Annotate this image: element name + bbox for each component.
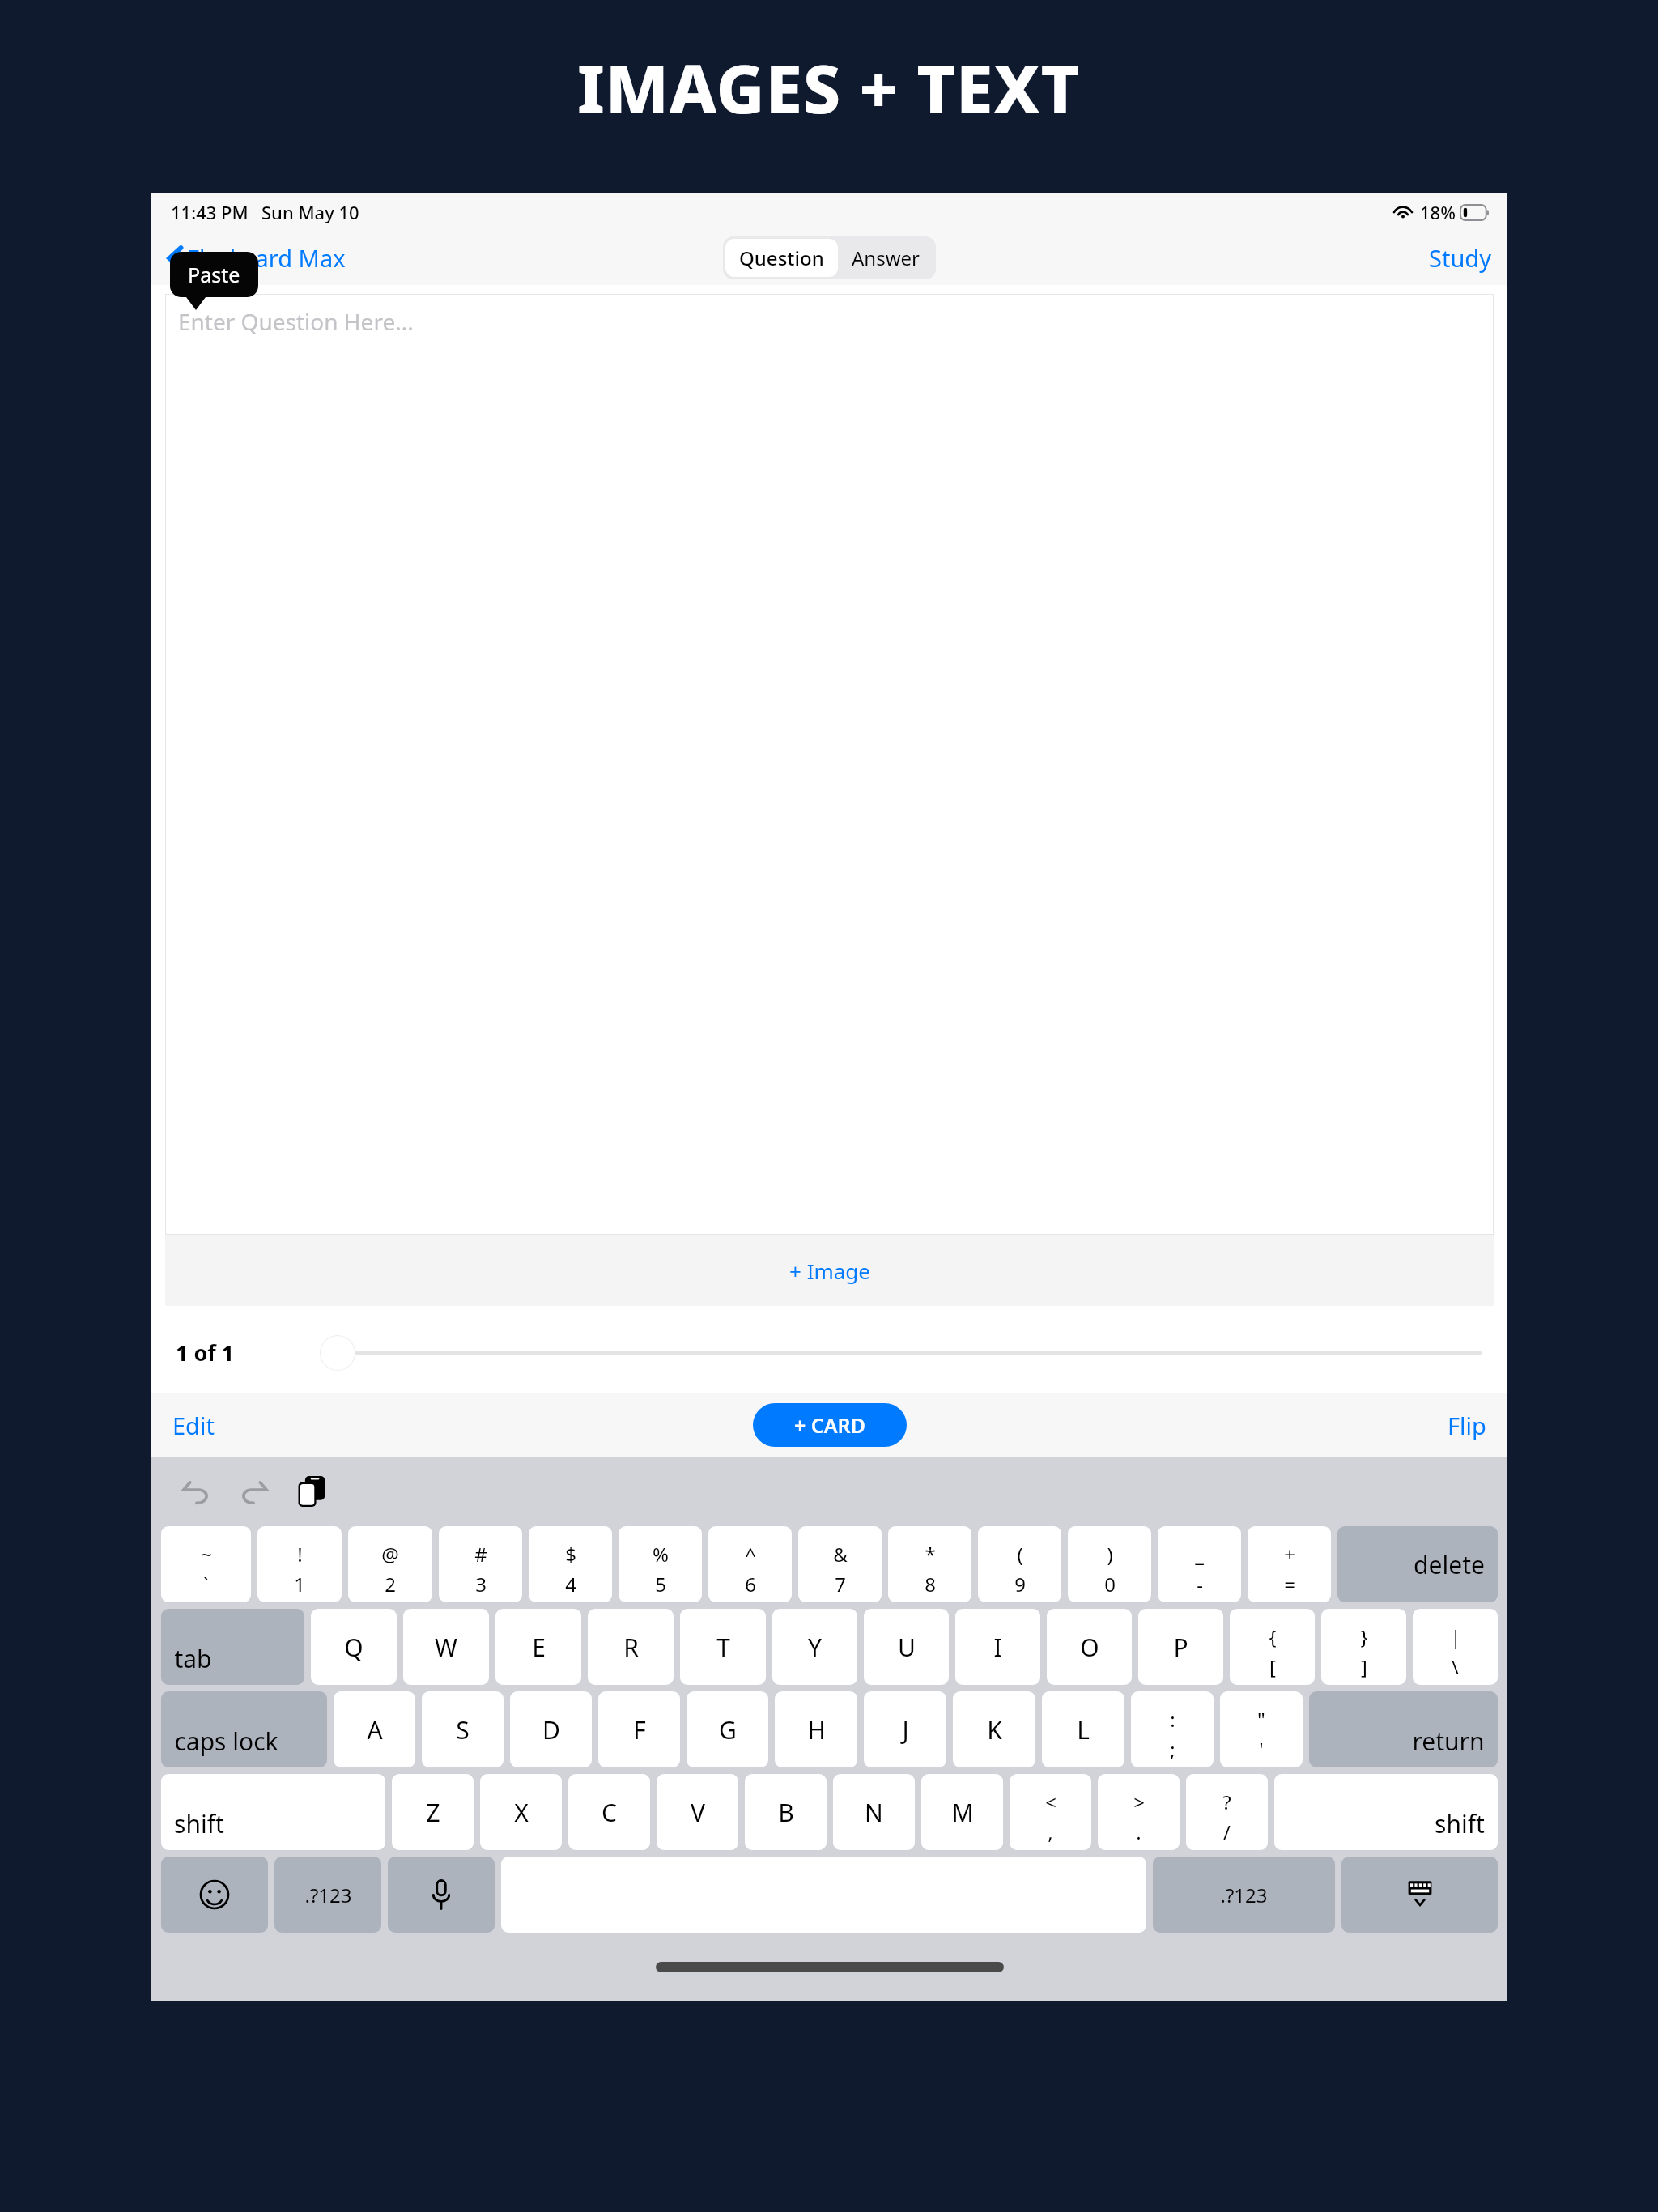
button[interactable]: Y xyxy=(772,1609,857,1685)
button[interactable]: * xyxy=(888,1526,971,1602)
button[interactable]: + CARD xyxy=(753,1403,907,1447)
staticText: Study xyxy=(1429,242,1491,274)
button[interactable]: _ xyxy=(1158,1526,1241,1602)
button[interactable]: Answer xyxy=(838,239,933,277)
button[interactable]: H xyxy=(775,1691,857,1767)
staticText: Flashcard Max xyxy=(187,242,346,274)
button[interactable]: ) xyxy=(1068,1526,1151,1602)
button[interactable]: Hide keyboard xyxy=(1341,1857,1498,1933)
button[interactable]: O xyxy=(1047,1609,1132,1685)
button[interactable]: W xyxy=(403,1609,489,1685)
button[interactable]: # xyxy=(439,1526,522,1602)
staticText: 2 xyxy=(385,1571,396,1597)
button[interactable]: + xyxy=(1248,1526,1331,1602)
button[interactable]: Redo xyxy=(231,1468,278,1515)
button[interactable]: Paste xyxy=(170,252,258,297)
staticText: G xyxy=(719,1713,737,1746)
button[interactable]: shift xyxy=(1274,1774,1498,1850)
staticText: . xyxy=(1136,1819,1141,1845)
button[interactable]: ~ xyxy=(161,1526,251,1602)
button[interactable]: D xyxy=(510,1691,592,1767)
button[interactable]: Flip xyxy=(1436,1403,1507,1448)
button[interactable]: .?123 xyxy=(274,1857,381,1933)
button[interactable]: } xyxy=(1321,1609,1406,1685)
button[interactable]: K xyxy=(953,1691,1035,1767)
button[interactable]: ! xyxy=(257,1526,342,1602)
button[interactable]: Undo xyxy=(172,1468,219,1515)
button[interactable]: | xyxy=(1413,1609,1498,1685)
button[interactable]: J xyxy=(864,1691,946,1767)
button[interactable] xyxy=(321,1330,1482,1376)
button[interactable]: : xyxy=(1131,1691,1214,1767)
button[interactable]: Edit xyxy=(151,1403,226,1448)
button[interactable]: > xyxy=(1098,1774,1180,1850)
staticText: S xyxy=(456,1713,470,1746)
staticText: $ xyxy=(565,1541,576,1568)
button[interactable]: Dictation xyxy=(388,1857,495,1933)
button[interactable]: S xyxy=(422,1691,504,1767)
button[interactable]: .?123 xyxy=(1153,1857,1335,1933)
button[interactable]: M xyxy=(921,1774,1003,1850)
staticText: ; xyxy=(1170,1736,1175,1763)
staticText: N xyxy=(865,1796,883,1829)
button[interactable]: E xyxy=(495,1609,581,1685)
button[interactable]: return xyxy=(1309,1691,1498,1767)
button[interactable]: tab xyxy=(161,1609,304,1685)
staticText: Sun May 10 xyxy=(261,200,359,224)
button[interactable]: P xyxy=(1138,1609,1223,1685)
staticText: M xyxy=(951,1796,974,1829)
staticText: } xyxy=(1360,1623,1368,1650)
button[interactable]: T xyxy=(680,1609,766,1685)
button[interactable]: Z xyxy=(392,1774,474,1850)
staticText: W xyxy=(435,1631,457,1664)
button[interactable]: shift xyxy=(161,1774,385,1850)
button[interactable]: Paste xyxy=(289,1468,336,1515)
button[interactable]: Question xyxy=(725,239,838,277)
button[interactable]: V xyxy=(657,1774,738,1850)
staticText: ' xyxy=(1259,1736,1264,1763)
staticText: , xyxy=(1048,1819,1053,1845)
button[interactable]: C xyxy=(568,1774,650,1850)
staticText: " xyxy=(1257,1706,1265,1733)
button[interactable]: G xyxy=(687,1691,768,1767)
button[interactable]: B xyxy=(745,1774,827,1850)
button[interactable]: N xyxy=(833,1774,915,1850)
button[interactable]: < xyxy=(1010,1774,1091,1850)
button[interactable]: % xyxy=(619,1526,702,1602)
staticText: : xyxy=(1170,1706,1175,1733)
staticText: Z xyxy=(426,1796,440,1829)
staticText: \ xyxy=(1452,1653,1459,1680)
button[interactable]: ( xyxy=(978,1526,1061,1602)
button[interactable]: F xyxy=(598,1691,680,1767)
button[interactable]: X xyxy=(480,1774,562,1850)
staticText: / xyxy=(1223,1819,1231,1845)
staticText: B xyxy=(778,1796,794,1829)
button[interactable]: Enter Question Here... xyxy=(166,295,1493,1234)
button[interactable]: $ xyxy=(529,1526,612,1602)
button[interactable]: U xyxy=(864,1609,949,1685)
staticText: J xyxy=(902,1713,909,1746)
button[interactable]: @ xyxy=(348,1526,432,1602)
staticText: H xyxy=(807,1713,826,1746)
staticText: Answer xyxy=(852,245,920,271)
button[interactable]: ? xyxy=(1186,1774,1268,1850)
button[interactable]: Q xyxy=(311,1609,397,1685)
button[interactable]: caps lock xyxy=(161,1691,327,1767)
button[interactable]: Flashcard Max xyxy=(168,242,346,274)
button[interactable]: + Image xyxy=(781,1249,878,1293)
button[interactable]: L xyxy=(1042,1691,1124,1767)
button[interactable]: " xyxy=(1220,1691,1303,1767)
button[interactable]: delete xyxy=(1337,1526,1498,1602)
other: Hide keyboard xyxy=(1404,1879,1436,1910)
button[interactable]: Study xyxy=(1429,242,1507,274)
button[interactable]: ^ xyxy=(708,1526,792,1602)
staticText: > xyxy=(1133,1789,1145,1815)
button[interactable]: & xyxy=(798,1526,882,1602)
button[interactable]: { xyxy=(1230,1609,1315,1685)
button[interactable]: A xyxy=(334,1691,415,1767)
button[interactable]: I xyxy=(955,1609,1040,1685)
button[interactable]: Emoji xyxy=(161,1857,268,1933)
staticText: IMAGES + TEXT xyxy=(577,42,1081,133)
button[interactable]: R xyxy=(588,1609,674,1685)
